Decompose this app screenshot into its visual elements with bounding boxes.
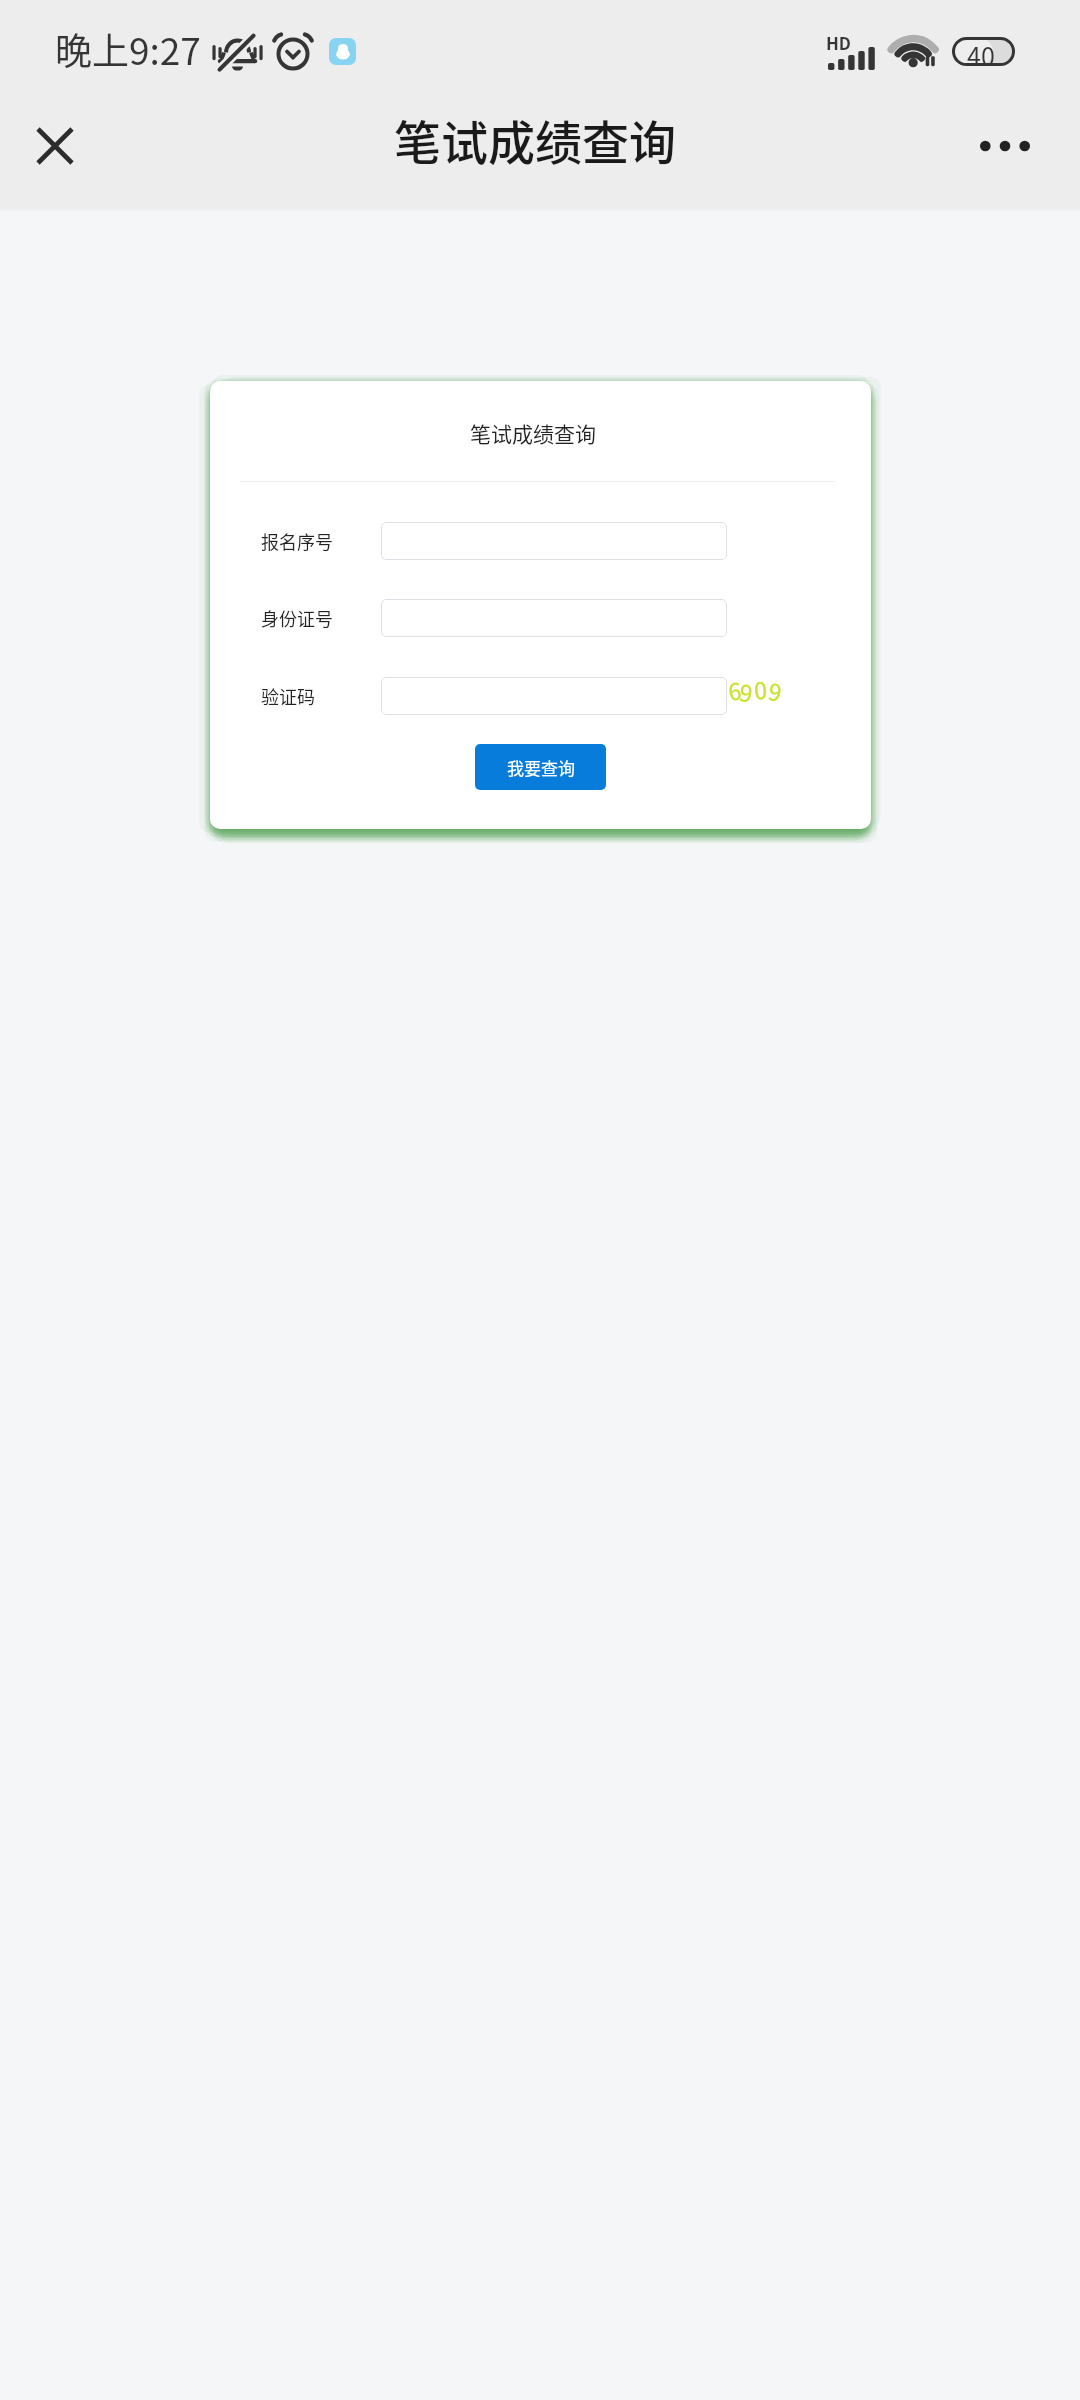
staticText: 9 (737, 674, 755, 709)
staticText: 0 (753, 672, 768, 705)
staticText: 身份证号 (261, 605, 333, 631)
button[interactable] (381, 522, 727, 560)
staticText: 笔试成绩查询 (394, 105, 676, 173)
staticText: 报名序号 (261, 528, 333, 554)
staticText: 晚上9:27 (55, 22, 201, 76)
staticText: 9 (766, 673, 785, 708)
staticText: 40 (967, 37, 995, 66)
button[interactable]: More options (956, 100, 1053, 191)
staticText: 我要查询 (507, 755, 575, 780)
button[interactable] (381, 599, 727, 637)
staticText: 6 (726, 672, 743, 707)
staticText: HD (826, 30, 852, 55)
staticText: 验证码 (261, 683, 315, 709)
button[interactable] (381, 677, 727, 715)
button[interactable]: Close (15, 100, 94, 191)
button[interactable]: 我要查询 (475, 744, 606, 790)
staticText: 笔试成绩查询 (470, 418, 596, 448)
